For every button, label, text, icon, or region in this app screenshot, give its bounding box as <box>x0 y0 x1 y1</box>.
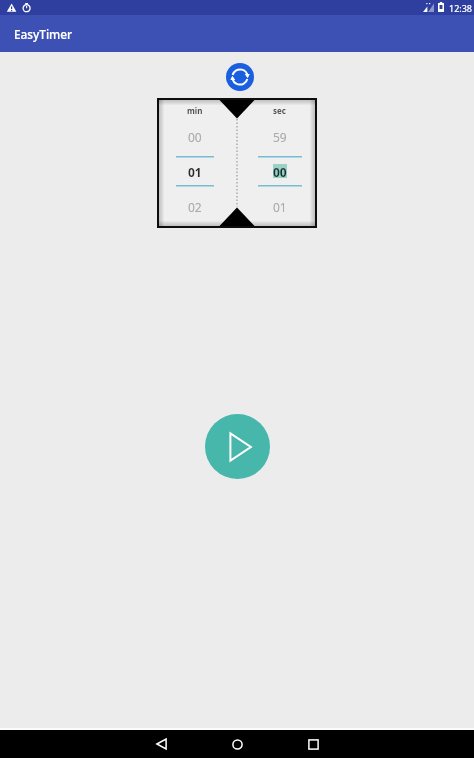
staticText: 59 <box>273 129 287 145</box>
button[interactable]: Recents <box>289 730 337 758</box>
staticText: 01 <box>188 164 202 180</box>
button[interactable]: Start timer <box>205 414 270 479</box>
button[interactable]: sec <box>249 100 310 226</box>
staticText: 00 <box>188 129 202 145</box>
button[interactable]: Reset <box>226 63 254 91</box>
staticText: 02 <box>188 199 202 215</box>
staticText: EasyTimer <box>14 26 73 42</box>
staticText: 00 <box>273 164 287 180</box>
button[interactable]: Back <box>137 730 185 758</box>
button[interactable]: EasyTimer <box>0 15 474 52</box>
staticText: min <box>187 105 203 116</box>
staticText: sec <box>273 105 286 116</box>
staticText: 12:38 <box>449 2 473 14</box>
staticText: 01 <box>273 199 287 215</box>
button[interactable]: min <box>165 100 225 226</box>
button[interactable]: Home <box>213 730 261 758</box>
